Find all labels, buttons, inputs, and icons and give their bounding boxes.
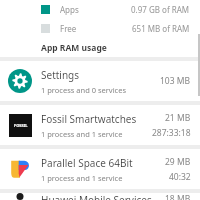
button[interactable]: Settings app icon — [0, 61, 200, 101]
other: App icon — [9, 193, 31, 200]
other: Settings app icon — [8, 69, 32, 93]
staticText: 21 MB — [165, 112, 191, 124]
staticText: 0.97 GB of RAM — [131, 4, 190, 15]
button[interactable]: Free — [0, 19, 200, 38]
staticText: FOSSIL — [14, 123, 28, 128]
staticText: 18 MB — [165, 193, 191, 200]
staticText: Free — [60, 23, 77, 34]
button[interactable]: Fossil Smartwatches app icon — [0, 105, 200, 145]
staticText: 103 MB — [160, 75, 191, 87]
other: Fossil Smartwatches app icon — [9, 114, 32, 137]
staticText: Apps — [60, 4, 79, 15]
staticText: 651 MB of RAM — [132, 23, 190, 34]
staticText: Settings — [41, 68, 80, 82]
staticText: Huawei Mobile Services — [41, 193, 152, 200]
button[interactable]: Parallel Space 64Bit Support app icon — [0, 149, 200, 189]
button[interactable]: Apps — [0, 0, 200, 19]
staticText: 1 process and 1 service — [41, 173, 123, 183]
other: Parallel Space 64Bit Support app icon — [9, 158, 31, 180]
staticText: Fossil Smartwatches — [41, 112, 137, 126]
staticText: 1 process and 0 services — [41, 85, 127, 95]
staticText: 1 process and 1 service — [41, 129, 123, 139]
staticText: 287:33:18 — [152, 127, 191, 139]
staticText: 40:32 — [169, 171, 191, 183]
staticText: 29 MB — [165, 156, 191, 168]
button[interactable]: App icon — [0, 193, 200, 200]
staticText: App RAM usage — [41, 42, 107, 54]
staticText: Parallel Space 64Bit Support — [41, 156, 161, 170]
